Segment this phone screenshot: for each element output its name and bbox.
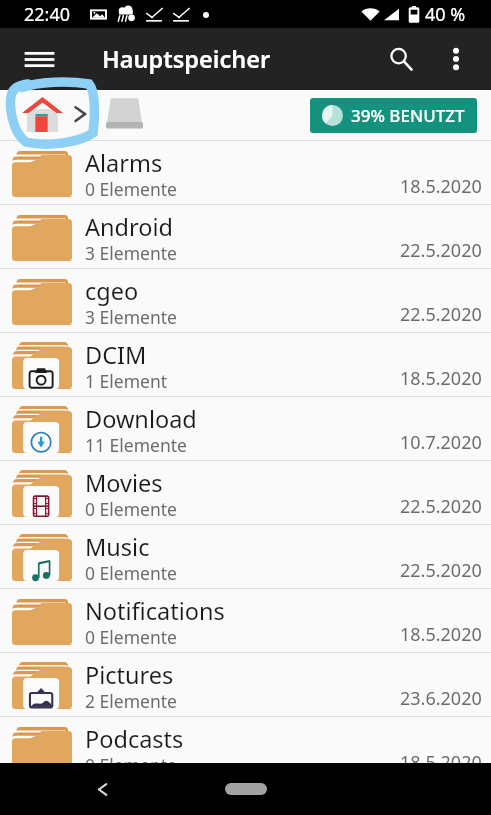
- staticText: 3 Elemente: [85, 241, 177, 265]
- staticText: 11 Elemente: [85, 433, 187, 457]
- staticText: cgeo: [85, 275, 139, 307]
- staticText: 0 Elemente: [85, 753, 177, 777]
- staticText: Movies: [85, 467, 163, 499]
- staticText: 22.5.2020: [400, 494, 482, 519]
- staticText: Podcasts: [85, 723, 184, 755]
- staticText: Notifications: [85, 595, 225, 627]
- button[interactable]: Home: [18, 95, 66, 133]
- button[interactable]: More options: [434, 37, 478, 81]
- staticText: 2 Elemente: [85, 689, 177, 713]
- staticText: 0 Elemente: [85, 625, 177, 649]
- staticText: 1 Element: [85, 369, 168, 393]
- staticText: 0 Elemente: [85, 177, 177, 201]
- staticText: Download: [85, 403, 197, 435]
- button[interactable]: Podcasts: [0, 717, 491, 780]
- button[interactable]: Android: [0, 205, 491, 268]
- button[interactable]: Internal storage: [100, 92, 148, 136]
- staticText: 22.5.2020: [400, 558, 482, 583]
- staticText: 0 Elemente: [85, 561, 177, 585]
- staticText: 18.5.2020: [400, 174, 482, 199]
- button[interactable]: 39% BENUTZT: [310, 98, 477, 133]
- staticText: 18.5.2020: [400, 366, 482, 391]
- button[interactable]: Music: [0, 525, 491, 588]
- button[interactable]: Back: [82, 769, 122, 809]
- button[interactable]: Download: [0, 397, 491, 460]
- staticText: Alarms: [85, 147, 163, 179]
- staticText: 23.6.2020: [400, 686, 482, 711]
- staticText: 22.5.2020: [400, 302, 482, 327]
- staticText: DCIM: [85, 339, 147, 371]
- button[interactable]: cgeo: [0, 269, 491, 332]
- button[interactable]: Home: [225, 783, 267, 795]
- staticText: 22:40: [24, 2, 71, 27]
- button[interactable]: DCIM: [0, 333, 491, 396]
- button[interactable]: Alarms: [0, 141, 491, 204]
- staticText: 40 %: [425, 2, 466, 27]
- staticText: 10.7.2020: [400, 430, 482, 455]
- staticText: Music: [85, 531, 150, 563]
- staticText: 39% BENUTZT: [351, 104, 465, 127]
- staticText: Pictures: [85, 659, 174, 691]
- button[interactable]: Pictures: [0, 653, 491, 716]
- button[interactable]: Movies: [0, 461, 491, 524]
- button[interactable]: Search: [377, 35, 425, 83]
- staticText: 22.5.2020: [400, 238, 482, 263]
- staticText: 3 Elemente: [85, 305, 177, 329]
- staticText: Android: [85, 211, 173, 243]
- staticText: 18.5.2020: [400, 750, 482, 775]
- button[interactable]: Notifications: [0, 589, 491, 652]
- staticText: Hauptspeicher: [102, 43, 271, 75]
- staticText: 18.5.2020: [400, 622, 482, 647]
- staticText: 0 Elemente: [85, 497, 177, 521]
- button[interactable]: Open navigation menu: [15, 35, 63, 83]
